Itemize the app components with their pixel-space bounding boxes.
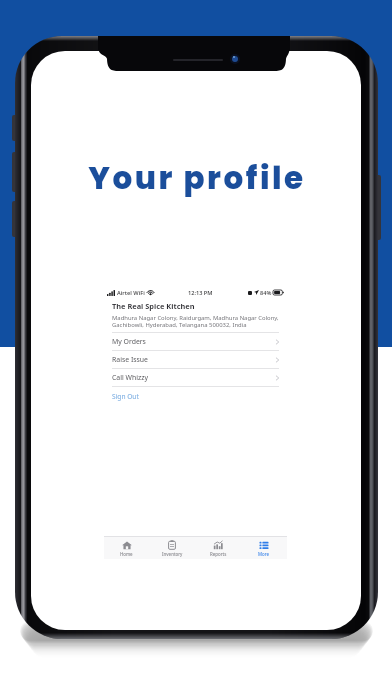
staticText: Your profile [88,156,306,199]
button[interactable]: Sign Out [104,387,287,404]
button[interactable]: Home [104,537,149,559]
staticText: Madhura Nagar Colony, Raidurgam, Madhura… [112,314,279,329]
staticText: Inventory [162,551,183,557]
staticText: Reports [210,551,227,557]
button[interactable]: Inventory [149,537,195,559]
staticText: 12:13 PM [188,289,213,297]
staticText: Raise Issue [112,355,148,364]
staticText: Sign Out [112,392,139,401]
staticText: My Orders [112,337,146,346]
staticText: More [258,551,270,557]
staticText: 84% [260,289,272,297]
staticText: The Real Spice Kitchen [112,301,195,311]
button[interactable]: Call Whizzy [104,368,287,386]
staticText: Call Whizzy [112,373,149,382]
button[interactable]: Raise Issue [104,350,287,368]
staticText: Airtel WiFi [117,289,145,297]
staticText: Home [120,551,133,557]
button[interactable]: More [241,537,287,559]
button[interactable]: My Orders [104,332,287,350]
button[interactable]: Reports [195,537,241,559]
